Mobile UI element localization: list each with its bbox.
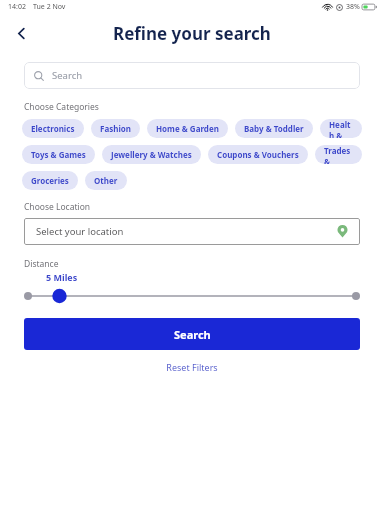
button[interactable]: Jewellery & Watches — [102, 145, 201, 164]
button[interactable]: Toys & Games — [22, 145, 95, 164]
staticText: Fashion — [100, 123, 131, 134]
staticText: Choose Categories — [24, 101, 99, 113]
staticText: Toys & Games — [31, 149, 86, 160]
staticText: Health & Beauty — [329, 119, 353, 138]
button[interactable]: Trades & Services — [315, 145, 362, 164]
button[interactable]: Back — [4, 16, 38, 50]
button[interactable]: Coupons & Vouchers — [208, 145, 308, 164]
button[interactable]: Groceries — [22, 171, 78, 190]
button[interactable]: Electronics — [22, 119, 84, 138]
staticText: 38% — [346, 2, 360, 12]
staticText: Distance — [24, 258, 59, 270]
button[interactable]: Baby & Toddler — [235, 119, 313, 138]
button[interactable]: Search — [24, 62, 360, 89]
staticText: Trades & Services — [324, 145, 353, 164]
button[interactable]: Reset Filters — [156, 358, 228, 376]
staticText: Select your location — [36, 225, 337, 238]
button[interactable]: Health & Beauty — [320, 119, 362, 138]
staticText: Groceries — [31, 175, 69, 186]
button[interactable]: Select your location — [24, 218, 360, 245]
staticText: 14:02 — [8, 2, 26, 12]
staticText: Baby & Toddler — [244, 123, 304, 134]
staticText: Electronics — [31, 123, 75, 134]
button[interactable]: Home & Garden — [147, 119, 228, 138]
staticText: 5 Miles — [46, 271, 78, 283]
button[interactable]: Search — [24, 318, 360, 350]
button[interactable]: Other — [85, 171, 127, 190]
button[interactable]: Distance slider — [24, 287, 360, 305]
staticText: Search — [174, 327, 211, 342]
staticText: Other — [94, 175, 118, 186]
staticText: Choose Location — [24, 201, 91, 213]
staticText: Reset Filters — [166, 361, 218, 373]
staticText: Coupons & Vouchers — [217, 149, 299, 160]
staticText: Jewellery & Watches — [111, 149, 192, 160]
staticText: Refine your search — [113, 22, 271, 45]
staticText: Tue 2 Nov — [33, 2, 66, 12]
staticText: Search — [52, 69, 83, 82]
button[interactable]: Fashion — [91, 119, 140, 138]
staticText: Home & Garden — [156, 123, 219, 134]
